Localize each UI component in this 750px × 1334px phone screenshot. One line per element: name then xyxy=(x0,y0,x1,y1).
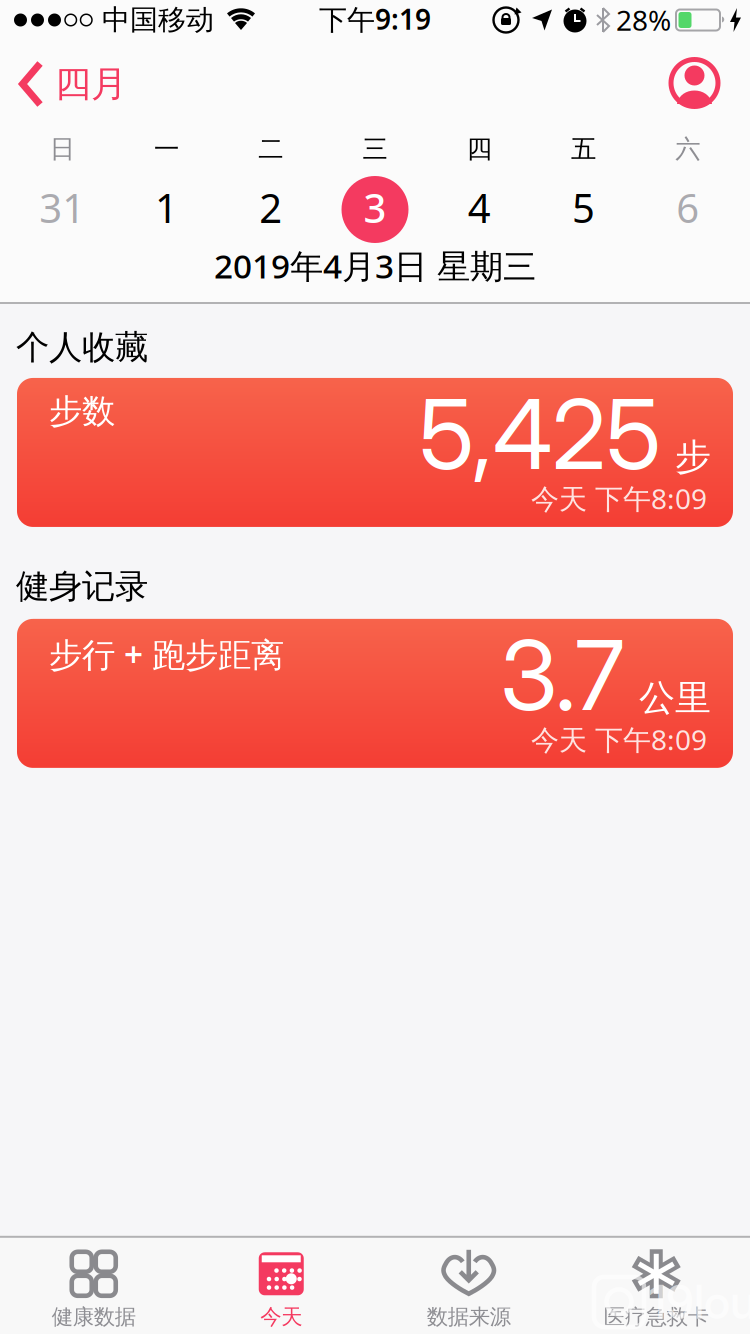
staticText: 健康数据 xyxy=(52,1304,136,1330)
button[interactable]: 步数 xyxy=(17,378,733,527)
staticText: 19lou xyxy=(649,1274,750,1330)
staticText: 二 xyxy=(258,133,283,164)
staticText: 个人收藏 xyxy=(16,327,148,368)
staticText: 三 xyxy=(362,133,387,164)
staticText: 2019年4月3日 星期三 xyxy=(214,243,536,288)
staticText: 3 xyxy=(363,181,386,234)
staticText: 1 xyxy=(155,181,178,234)
button[interactable]: 4月2日 xyxy=(219,176,323,243)
button[interactable]: 返回四月 xyxy=(0,50,127,95)
button[interactable]: 步行 + 跑步距离 xyxy=(17,619,733,768)
staticText: 5 xyxy=(572,181,595,234)
staticText: 中国移动 xyxy=(102,3,214,37)
staticText: 健身记录 xyxy=(16,566,148,607)
staticText: 步行 + 跑步距离 xyxy=(49,632,284,676)
staticText: 步 xyxy=(675,435,711,479)
staticText: 今天 xyxy=(260,1304,302,1330)
button[interactable]: 数据来源 xyxy=(375,1238,562,1334)
button[interactable]: 4月31日 xyxy=(10,176,114,243)
staticText: 四 xyxy=(467,133,492,164)
button[interactable]: 今天 xyxy=(187,1238,375,1334)
button[interactable]: 医疗急救卡 xyxy=(562,1238,750,1334)
staticText: 今天 下午8:09 xyxy=(531,721,707,758)
staticText: 四月 xyxy=(55,62,127,106)
staticText: 数据来源 xyxy=(427,1304,511,1330)
staticText: 日 xyxy=(50,133,75,164)
staticText: 今天 下午8:09 xyxy=(531,480,707,517)
staticText: 4 xyxy=(468,181,491,234)
button[interactable]: 个人信息 xyxy=(668,46,750,99)
staticText: 五 xyxy=(571,133,596,164)
staticText: 2 xyxy=(259,181,282,234)
staticText: 31 xyxy=(39,181,85,234)
staticText: 3.7 xyxy=(500,617,625,733)
staticText: 下午9:19 xyxy=(319,0,431,38)
button[interactable]: 4月5日 xyxy=(531,176,636,243)
staticText: 6 xyxy=(676,181,699,234)
staticText: 28% xyxy=(616,1,671,39)
button[interactable]: 4月4日 xyxy=(427,176,531,243)
button[interactable]: 4月1日 xyxy=(114,176,219,243)
staticText: 公里 xyxy=(639,676,711,720)
button[interactable]: 4月3日 xyxy=(323,176,427,243)
button[interactable]: 4月6日 xyxy=(636,176,740,243)
staticText: 5,425 xyxy=(419,376,661,492)
staticText: 步数 xyxy=(49,391,115,432)
button[interactable]: 健康数据 xyxy=(0,1238,187,1334)
staticText: 一 xyxy=(154,133,179,164)
staticText: 六 xyxy=(675,133,700,164)
staticText: 医疗急救卡 xyxy=(604,1304,709,1330)
